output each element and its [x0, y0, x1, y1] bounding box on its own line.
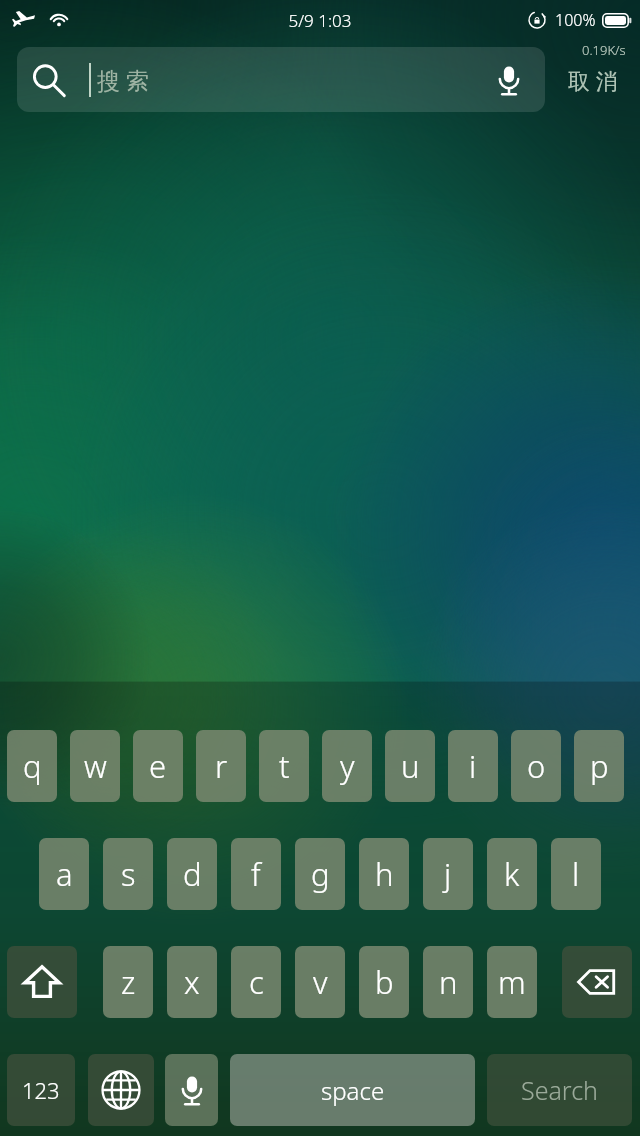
- button[interactable]: s: [103, 838, 153, 910]
- button[interactable]: space: [230, 1054, 475, 1126]
- staticText: u: [401, 745, 420, 787]
- button[interactable]: m: [487, 946, 537, 1018]
- button[interactable]: b: [359, 946, 409, 1018]
- staticText: 123: [22, 1075, 60, 1105]
- staticText: k: [504, 853, 520, 895]
- button[interactable]: z: [103, 946, 153, 1018]
- button[interactable]: i: [448, 730, 498, 802]
- staticText: i: [469, 745, 477, 787]
- button[interactable]: o: [511, 730, 561, 802]
- button[interactable]: Shift: [7, 946, 77, 1018]
- button[interactable]: d: [167, 838, 217, 910]
- button[interactable]: e: [133, 730, 183, 802]
- staticText: w: [84, 745, 107, 787]
- staticText: space: [321, 1074, 385, 1107]
- button[interactable]: y: [322, 730, 372, 802]
- staticText: m: [498, 961, 526, 1003]
- button[interactable]: w: [70, 730, 120, 802]
- button[interactable]: g: [295, 838, 345, 910]
- button[interactable]: Search: [487, 1054, 632, 1126]
- staticText: j: [444, 853, 452, 895]
- button[interactable]: 123: [7, 1054, 75, 1126]
- other: Search: [31, 63, 65, 97]
- button[interactable]: p: [574, 730, 624, 802]
- staticText: 搜 索: [97, 64, 149, 95]
- staticText: s: [121, 853, 136, 895]
- staticText: t: [279, 745, 290, 787]
- button[interactable]: n: [423, 946, 473, 1018]
- button[interactable]: c: [231, 946, 281, 1018]
- button[interactable]: Voice search: [489, 60, 529, 100]
- button[interactable]: Change keyboard language: [88, 1054, 154, 1126]
- button[interactable]: r: [196, 730, 246, 802]
- staticText: z: [121, 961, 136, 1003]
- staticText: f: [251, 853, 261, 895]
- staticText: x: [184, 961, 200, 1003]
- staticText: n: [439, 961, 458, 1003]
- staticText: v: [313, 961, 328, 1003]
- staticText: 0.19K/s: [582, 41, 626, 59]
- staticText: c: [249, 961, 264, 1003]
- button[interactable]: f: [231, 838, 281, 910]
- staticText: h: [375, 853, 394, 895]
- button[interactable]: k: [487, 838, 537, 910]
- staticText: 取 消: [568, 65, 618, 95]
- staticText: Search: [521, 1073, 598, 1107]
- button[interactable]: q: [7, 730, 57, 802]
- staticText: 100%: [555, 9, 596, 31]
- button[interactable]: h: [359, 838, 409, 910]
- staticText: a: [56, 853, 73, 895]
- staticText: o: [527, 745, 546, 787]
- button[interactable]: j: [423, 838, 473, 910]
- button[interactable]: Search: [17, 47, 545, 112]
- staticText: y: [340, 745, 355, 787]
- staticText: e: [149, 745, 167, 787]
- staticText: r: [215, 745, 228, 787]
- button[interactable]: x: [167, 946, 217, 1018]
- staticText: p: [590, 745, 609, 787]
- staticText: d: [183, 853, 202, 895]
- staticText: b: [375, 961, 394, 1003]
- button[interactable]: u: [385, 730, 435, 802]
- button[interactable]: Delete: [562, 946, 632, 1018]
- staticText: g: [311, 853, 330, 895]
- button[interactable]: 取 消: [545, 47, 640, 112]
- button[interactable]: a: [39, 838, 89, 910]
- staticText: 5/9 1:03: [288, 9, 352, 32]
- staticText: q: [23, 745, 42, 787]
- button[interactable]: l: [551, 838, 601, 910]
- button[interactable]: Dictation: [165, 1054, 218, 1126]
- staticText: l: [572, 853, 580, 895]
- button[interactable]: t: [259, 730, 309, 802]
- button[interactable]: v: [295, 946, 345, 1018]
